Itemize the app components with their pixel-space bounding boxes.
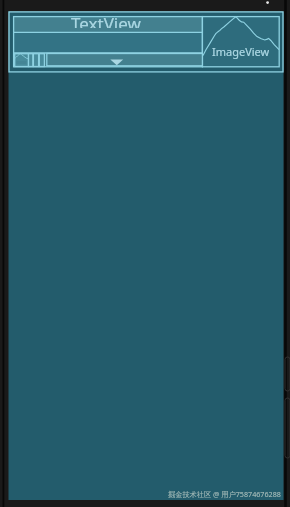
staticText: ImageView <box>212 44 270 59</box>
staticText: TextView <box>71 12 141 28</box>
staticText: 掘金技术社区 @ 用户75874676288 <box>168 489 281 499</box>
button[interactable]: ImageView <box>202 17 279 67</box>
button[interactable]: TextView <box>14 17 203 33</box>
